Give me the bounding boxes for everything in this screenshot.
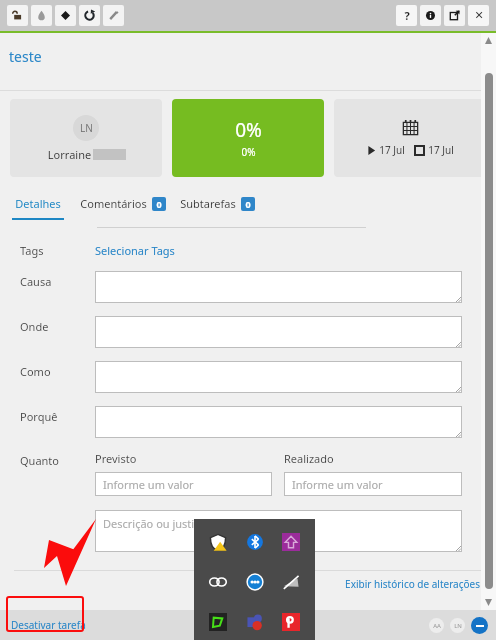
staticText: Como — [20, 364, 51, 379]
button[interactable]: 17 Jul — [334, 99, 486, 177]
button[interactable]: Mute — [278, 569, 304, 595]
button[interactable]: Exibir histórico de alterações — [345, 577, 480, 591]
button[interactable] — [485, 73, 493, 589]
button[interactable]: Refresh — [79, 5, 100, 26]
button[interactable]: Update — [278, 529, 304, 555]
staticText: Comentários — [80, 196, 147, 211]
button[interactable]: Scroll down — [481, 595, 496, 610]
staticText: Quanto — [20, 453, 59, 468]
staticText: Tags — [20, 243, 44, 258]
button[interactable] — [95, 361, 462, 393]
button[interactable]: Bluetooth — [242, 529, 268, 555]
button[interactable]: 0% — [172, 99, 324, 177]
button[interactable]: Comentários — [80, 196, 166, 220]
staticText: Selecionar Tags — [95, 243, 175, 258]
button[interactable]: Open in new window — [444, 5, 465, 26]
button[interactable]: LN user — [450, 618, 465, 633]
button[interactable]: Recorder — [278, 609, 304, 635]
button[interactable]: Messages — [242, 569, 268, 595]
button[interactable]: Informe um valor — [284, 472, 462, 496]
button[interactable]: Security — [205, 529, 231, 555]
button[interactable]: Selecionar Tags — [95, 243, 175, 258]
button[interactable] — [95, 406, 462, 438]
staticText: 0% — [241, 145, 256, 159]
button[interactable]: App — [205, 609, 231, 635]
staticText: Realizado — [284, 451, 334, 466]
button[interactable]: Close — [468, 5, 489, 26]
staticText: Desativar tarefa — [11, 618, 86, 632]
staticText: 17 Jul — [379, 143, 405, 157]
staticText: Informe um valor — [292, 477, 383, 492]
staticText: Detalhes — [15, 196, 61, 211]
button[interactable]: Desativar tarefa — [11, 618, 86, 632]
button[interactable]: Detalhes — [10, 196, 66, 220]
button[interactable]: Link — [205, 569, 231, 595]
staticText: Exibir histórico de alterações — [345, 577, 480, 591]
button[interactable] — [95, 271, 462, 303]
button[interactable]: Scroll up — [481, 33, 496, 48]
button[interactable]: Color — [31, 5, 52, 26]
staticText: ✕ — [474, 9, 484, 22]
button[interactable]: Info — [420, 5, 441, 26]
staticText: ? — [404, 8, 410, 23]
button[interactable] — [95, 316, 462, 348]
button[interactable]: Help — [396, 5, 417, 26]
staticText: teste — [9, 47, 42, 66]
staticText: 17 Jul — [428, 143, 454, 157]
staticText: Descrição ou justificativa — [103, 516, 231, 531]
button[interactable]: Informe um valor — [95, 472, 272, 496]
button[interactable]: Status — [471, 617, 488, 634]
staticText: Informe um valor — [103, 477, 194, 492]
staticText: 0 — [245, 198, 251, 210]
button[interactable]: Lock — [7, 5, 28, 26]
staticText: 0 — [156, 198, 162, 210]
button[interactable]: Subtarefas — [180, 196, 255, 220]
staticText: 0% — [235, 117, 262, 143]
staticText: Previsto — [95, 451, 137, 466]
staticText: Porquê — [20, 409, 58, 424]
staticText: Lorraine — [46, 147, 93, 162]
button[interactable]: AA user — [429, 618, 444, 633]
button[interactable]: Descrição ou justificativa — [95, 510, 462, 552]
button[interactable]: Teams — [242, 609, 268, 635]
staticText: LN — [454, 622, 462, 630]
staticText: Causa — [20, 274, 52, 289]
staticText: AA — [433, 622, 441, 630]
staticText: Subtarefas — [180, 196, 236, 211]
staticText: Onde — [20, 319, 49, 334]
button[interactable]: Shape — [55, 5, 76, 26]
button[interactable]: LN — [10, 99, 162, 177]
button[interactable]: Attachment — [103, 5, 124, 26]
staticText: LN — [80, 121, 93, 135]
